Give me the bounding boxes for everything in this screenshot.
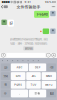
button[interactable]: More options: [52, 53, 56, 57]
button[interactable]: MNO: [42, 72, 56, 80]
button[interactable]: 符: [1, 81, 10, 89]
staticText: 发送: [49, 92, 53, 95]
button[interactable]: ☺: [1, 89, 10, 97]
staticText: ，: [18, 92, 21, 95]
staticText: 123: [4, 66, 7, 69]
staticText: 前往开启: [24, 47, 32, 50]
button[interactable]: 分词: [1, 72, 10, 80]
staticText: ●●●● 中国移动 9:41: [2, 0, 31, 4]
staticText: 下午好呀: [36, 12, 48, 17]
staticText: ⌫: [50, 66, 53, 69]
button[interactable]: Voice input: [1, 53, 5, 57]
button[interactable]: 空格: [29, 89, 46, 97]
staticText: 「设置 - 通用 - 文件传输」完成开启操作。: [8, 42, 48, 45]
staticText: 符: [4, 83, 6, 86]
staticText: 该功能需要在手机端开启后才能使用，前往: [9, 37, 47, 41]
button[interactable]: ⌫: [47, 63, 56, 71]
staticText: 好: [9, 21, 12, 26]
staticText: ☺: [4, 92, 7, 95]
button[interactable]: GHI: [11, 72, 25, 80]
staticText: JKL: [31, 74, 35, 78]
button[interactable]: 发送: [47, 89, 56, 97]
staticText: WXYZ: [45, 83, 53, 86]
button[interactable]: DEF: [29, 63, 46, 71]
staticText: DEF: [35, 66, 40, 69]
staticText: 96%: [45, 0, 52, 4]
staticText: PQRS: [14, 83, 22, 86]
button[interactable]: WXYZ: [42, 81, 56, 89]
staticText: TUV: [30, 83, 36, 86]
button[interactable]: TUV: [26, 81, 41, 89]
button[interactable]: Emoji: [46, 53, 50, 57]
button[interactable]: More: [50, 4, 57, 9]
staticText: ABC: [16, 66, 22, 69]
button[interactable]: JKL: [26, 72, 41, 80]
staticText: 文件传输助手: [16, 4, 40, 10]
button[interactable]: PQRS: [11, 81, 25, 89]
button[interactable]: ABC: [11, 63, 28, 71]
staticText: MNO: [46, 74, 52, 78]
staticText: 分词: [3, 74, 7, 78]
button[interactable]: Back: [0, 4, 9, 9]
staticText: GHI: [16, 74, 21, 78]
button[interactable]: 123: [1, 63, 10, 71]
staticText: 空格: [34, 92, 40, 95]
